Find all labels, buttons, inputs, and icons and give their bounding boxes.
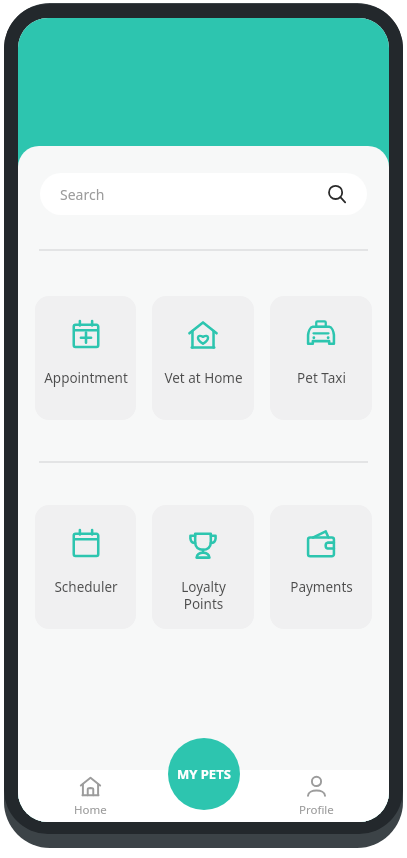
button[interactable]: Scheduler	[35, 505, 136, 629]
button[interactable]: Home	[18, 770, 163, 822]
button[interactable]: MY PETS	[168, 738, 240, 810]
staticText: Appointment	[44, 369, 128, 387]
staticText: Scheduler	[54, 578, 118, 596]
button[interactable]: Loyalty Points	[152, 505, 254, 629]
button[interactable]: Appointment	[35, 296, 136, 420]
staticText: Loyalty Points	[181, 578, 226, 613]
button[interactable]: Profile	[243, 770, 389, 822]
staticText: Pet Taxi	[297, 369, 346, 387]
button[interactable]: Payments	[270, 505, 372, 629]
staticText: MY PETS	[177, 765, 231, 783]
staticText: Search	[60, 185, 105, 204]
button[interactable]: Search	[40, 173, 367, 215]
staticText: Payments	[290, 578, 353, 596]
button[interactable]: Vet at Home	[152, 296, 254, 420]
staticText: Home	[74, 802, 107, 818]
button[interactable]: Pet Taxi	[270, 296, 372, 420]
staticText: Vet at Home	[164, 369, 243, 387]
staticText: Profile	[299, 802, 334, 818]
